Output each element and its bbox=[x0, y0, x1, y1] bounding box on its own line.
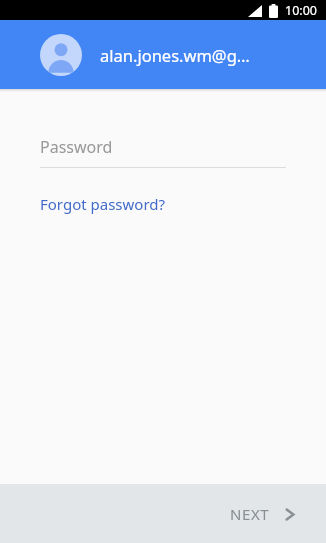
staticText: NEXT bbox=[230, 504, 270, 524]
button[interactable]: NEXT bbox=[222, 496, 304, 532]
other: Next bbox=[283, 508, 296, 521]
button[interactable]: alan.jones.wm@g… bbox=[0, 20, 326, 89]
button[interactable]: Forgot password? bbox=[40, 192, 166, 216]
staticText: Password bbox=[40, 136, 113, 158]
staticText: 10:00 bbox=[285, 2, 317, 19]
staticText: alan.jones.wm@g… bbox=[100, 44, 250, 66]
button[interactable]: Password bbox=[0, 136, 326, 168]
staticText: Forgot password? bbox=[40, 194, 166, 214]
